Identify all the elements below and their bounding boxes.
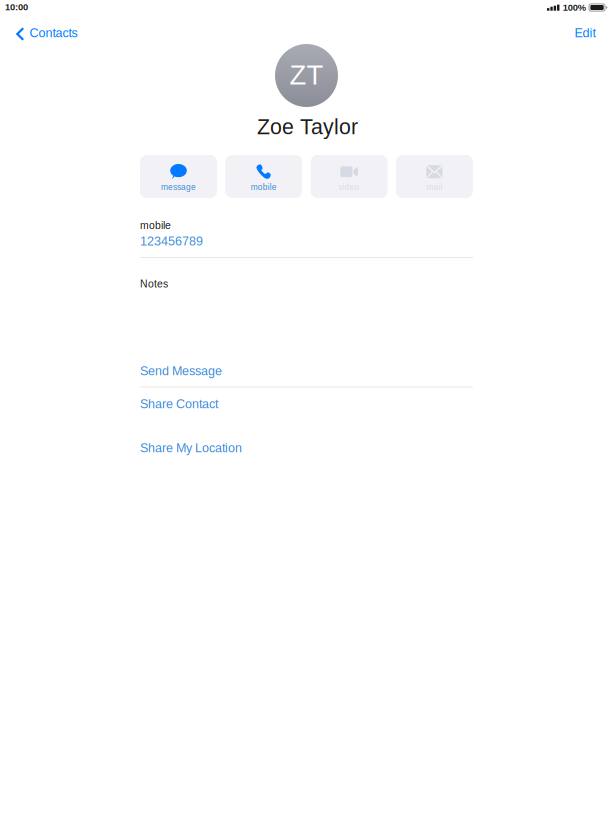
staticText: mobile	[140, 219, 171, 231]
staticText: Send Message	[140, 364, 222, 378]
button[interactable]: Edit	[564, 20, 605, 46]
staticText: Share Contact	[140, 397, 218, 411]
staticText: mail	[426, 182, 442, 192]
staticText: Zoe Taylor	[257, 115, 358, 139]
staticText: Contacts	[30, 26, 78, 40]
button[interactable]: mail	[396, 155, 473, 198]
button[interactable]: mobile	[140, 219, 473, 248]
staticText: Notes	[140, 278, 168, 290]
button[interactable]: Share Contact	[140, 393, 473, 415]
staticText: 123456789	[140, 234, 203, 248]
staticText: Share My Location	[140, 441, 242, 455]
staticText: 10:00	[5, 2, 28, 12]
staticText: mobile	[251, 182, 277, 192]
button[interactable]: Contacts	[6, 20, 88, 46]
staticText: 100%	[563, 2, 586, 13]
button[interactable]: video	[311, 155, 388, 198]
button[interactable]: Notes	[140, 278, 473, 350]
staticText: Edit	[574, 26, 595, 40]
button[interactable]: Send Message	[140, 360, 473, 382]
staticText: ZT	[289, 60, 323, 90]
button[interactable]: message	[140, 155, 217, 198]
button[interactable]: mobile	[225, 155, 302, 198]
staticText: message	[161, 182, 196, 192]
staticText: video	[339, 182, 360, 192]
button[interactable]: Share My Location	[140, 437, 473, 459]
